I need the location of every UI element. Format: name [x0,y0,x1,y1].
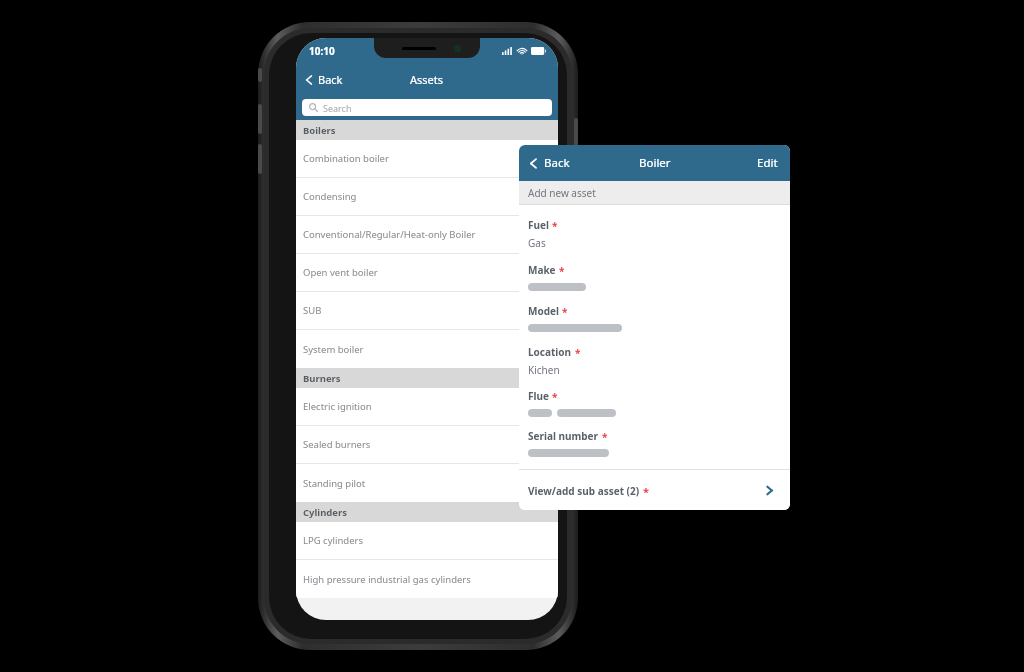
staticText: * [562,305,568,319]
staticText: Back [544,155,570,171]
button[interactable]: Back [519,150,578,176]
staticText: * [575,346,581,360]
button[interactable]: LPG cylinders [296,522,558,560]
staticText: Condensing [303,190,357,203]
staticText: * [552,390,558,404]
staticText: LPG cylinders [303,534,363,547]
staticText: Location [528,345,572,359]
button[interactable]: Search [302,99,552,116]
staticText: * [602,430,608,444]
button[interactable]: System boiler [296,330,558,368]
button[interactable]: High pressure industrial gas cylinders [296,560,558,598]
staticText: Model [528,304,559,318]
button[interactable]: Condensing [296,178,558,216]
other: Open [765,485,776,496]
staticText: Standing pilot [303,477,366,490]
staticText: 10:10 [309,44,335,58]
staticText: Add new asset [528,186,596,200]
staticText: Conventional/Regular/Heat-only Boiler [303,228,476,241]
staticText: Combination boiler [303,152,389,165]
staticText: Boilers [303,124,336,137]
staticText: Make [528,263,556,277]
button[interactable]: View/add sub asset (2) [519,470,790,510]
staticText: Edit [757,155,778,171]
staticText: Back [318,72,343,87]
button[interactable]: Electric ignition [296,388,558,426]
button[interactable]: Open vent boiler [296,254,558,292]
button[interactable]: SUB [296,292,558,330]
staticText: Serial number [528,429,599,443]
button[interactable]: Edit [745,149,790,177]
staticText: * [559,264,565,278]
staticText: Cylinders [303,506,348,519]
button[interactable]: Combination boiler [296,140,558,178]
other: Search [309,103,318,112]
other: Back [304,74,316,86]
staticText: Flue [528,389,549,403]
button[interactable]: Back [296,68,351,91]
staticText: SUB [303,304,322,317]
staticText: Fuel [528,218,549,232]
button[interactable]: Add new asset [519,181,790,204]
staticText: High pressure industrial gas cylinders [303,573,471,586]
staticText: Gas [528,236,546,250]
staticText: Search [323,102,352,114]
button[interactable]: Sealed burners [296,426,558,464]
button[interactable]: Standing pilot [296,464,558,502]
staticText: Open vent boiler [303,266,378,279]
staticText: View/add sub asset (2) [528,484,640,498]
other: Back [528,157,541,170]
staticText: Kichen [528,363,560,377]
staticText: Boiler [639,155,671,171]
staticText: Sealed burners [303,438,371,451]
button[interactable]: Conventional/Regular/Heat-only Boiler [296,216,558,254]
staticText: Electric ignition [303,400,372,413]
staticText: Burners [303,372,341,385]
staticText: * [552,219,558,233]
staticText: System boiler [303,343,364,356]
staticText: Assets [410,72,444,87]
staticText: * [643,484,649,499]
